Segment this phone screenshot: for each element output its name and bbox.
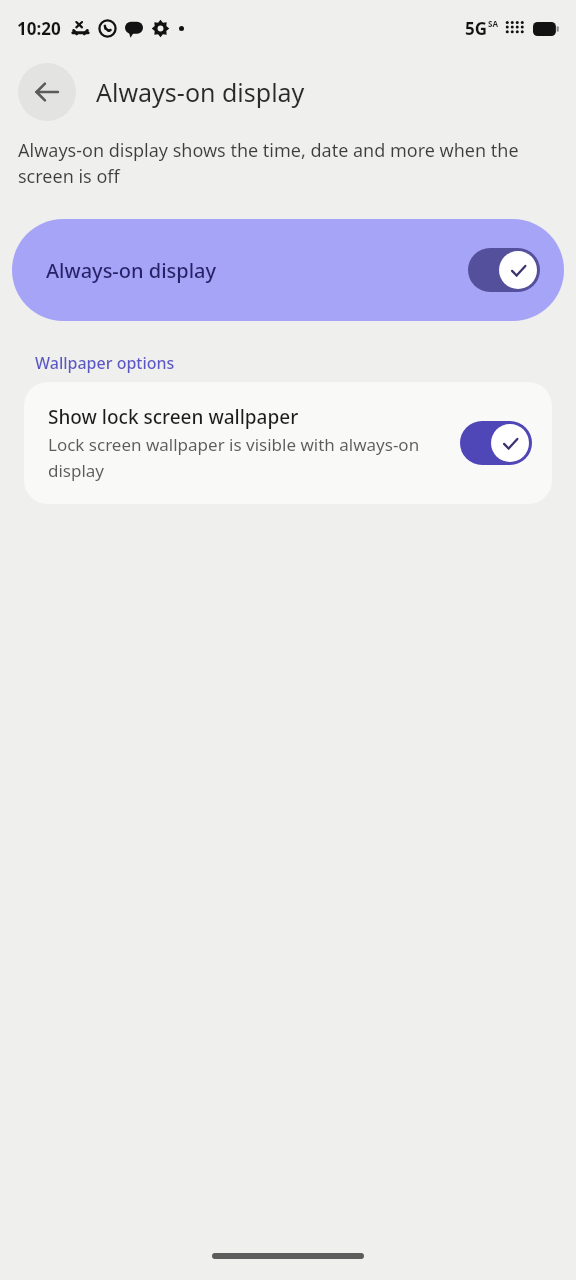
staticText: 5G bbox=[465, 17, 488, 40]
button[interactable]: Show lock screen wallpaper bbox=[24, 382, 552, 504]
button[interactable]: Toggle on bbox=[468, 248, 540, 292]
staticText: Show lock screen wallpaper bbox=[48, 404, 299, 430]
button[interactable]: Back bbox=[18, 63, 76, 121]
staticText: Always-on display bbox=[46, 257, 468, 284]
button[interactable]: Toggle on bbox=[460, 421, 532, 465]
staticText: Lock screen wallpaper is visible with al… bbox=[48, 433, 448, 482]
staticText: SA bbox=[488, 18, 498, 29]
staticText: 10:20 bbox=[17, 17, 61, 40]
staticText: Always-on display bbox=[96, 75, 305, 109]
staticText: Wallpaper options bbox=[35, 352, 175, 374]
button[interactable]: Always-on display bbox=[12, 219, 564, 321]
staticText: Always-on display shows the time, date a… bbox=[18, 138, 542, 189]
